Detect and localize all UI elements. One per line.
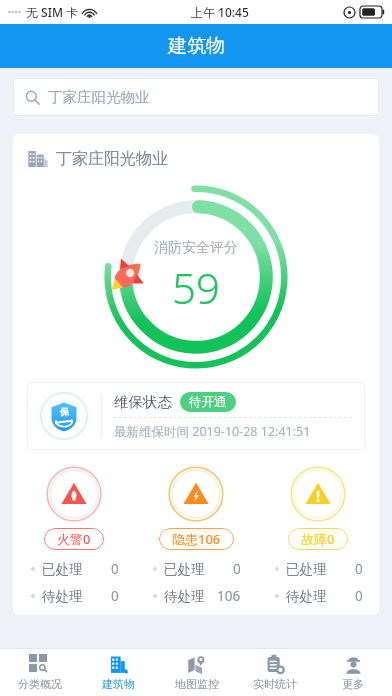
staticText: 0 bbox=[111, 587, 119, 605]
staticText: 0 bbox=[355, 560, 363, 578]
staticText: 丁家庄阳光物业 bbox=[56, 149, 168, 169]
staticText: 已处理 bbox=[286, 561, 327, 578]
staticText: 隐患106 bbox=[172, 530, 221, 548]
staticText: 59 bbox=[172, 259, 220, 316]
button[interactable]: 故障0 bbox=[257, 466, 379, 550]
button[interactable]: 隐患106 bbox=[135, 466, 257, 550]
staticText: 保 bbox=[60, 406, 69, 417]
staticText: 待开通 bbox=[189, 394, 227, 410]
staticText: 更多 bbox=[342, 677, 364, 691]
button[interactable]: 分类概况 bbox=[0, 649, 79, 696]
staticText: 待处理 bbox=[42, 588, 83, 605]
staticText: 分类概况 bbox=[18, 677, 62, 691]
staticText: 实时统计 bbox=[253, 677, 297, 691]
button[interactable]: 实时统计 bbox=[236, 649, 314, 696]
staticText: 已处理 bbox=[42, 561, 83, 578]
staticText: 丁家庄阳光物业 bbox=[48, 88, 150, 106]
staticText: 建筑物 bbox=[102, 677, 135, 691]
staticText: 0 bbox=[233, 560, 241, 578]
button[interactable]: 地图监控 bbox=[158, 649, 236, 696]
staticText: 已处理 bbox=[164, 561, 205, 578]
staticText: 上午 10:45 bbox=[191, 4, 249, 20]
button[interactable]: 保 bbox=[27, 382, 365, 450]
staticText: 火警0 bbox=[57, 530, 91, 548]
staticText: 待处理 bbox=[164, 588, 205, 605]
staticText: 故障0 bbox=[301, 530, 335, 548]
button[interactable]: 火警0 bbox=[13, 466, 135, 550]
staticText: 最新维保时间 2019-10-28 12:41:51 bbox=[114, 423, 311, 440]
button[interactable]: 更多 bbox=[314, 649, 392, 696]
button[interactable]: 丁家庄阳光物业 bbox=[27, 148, 379, 170]
staticText: 地图监控 bbox=[175, 677, 219, 691]
staticText: 0 bbox=[111, 560, 119, 578]
staticText: 消防安全评分 bbox=[154, 239, 238, 257]
staticText: 建筑物 bbox=[168, 34, 225, 58]
staticText: 106 bbox=[217, 587, 241, 605]
staticText: 待处理 bbox=[286, 588, 327, 605]
button[interactable]: 丁家庄阳光物业 bbox=[13, 78, 379, 116]
staticText: 维保状态 bbox=[114, 393, 172, 411]
staticText: 无 SIM 卡 bbox=[26, 4, 79, 20]
button[interactable]: 建筑物 bbox=[79, 649, 158, 696]
staticText: 0 bbox=[355, 587, 363, 605]
